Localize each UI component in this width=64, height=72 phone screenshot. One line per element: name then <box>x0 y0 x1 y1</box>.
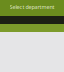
staticText: Select department <box>9 3 54 11</box>
